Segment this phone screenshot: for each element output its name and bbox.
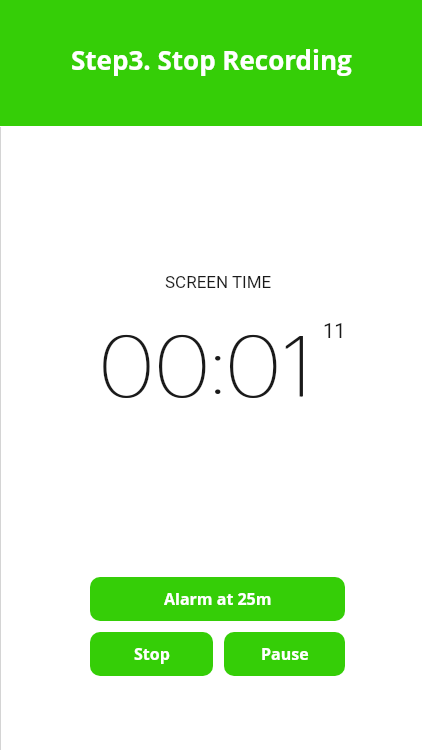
staticText: 11: [323, 319, 346, 342]
staticText: Stop: [134, 643, 170, 665]
staticText: Alarm at 25m: [164, 588, 272, 610]
staticText: Pause: [261, 643, 309, 665]
staticText: Step3. Stop Recording: [71, 42, 352, 77]
button[interactable]: Stop: [90, 632, 213, 676]
staticText: 00:01: [98, 302, 309, 434]
staticText: SCREEN TIME: [165, 272, 272, 292]
button[interactable]: Pause: [224, 632, 345, 676]
button[interactable]: Alarm at 25m: [90, 577, 345, 621]
staticText: 00:01: [99, 302, 310, 434]
